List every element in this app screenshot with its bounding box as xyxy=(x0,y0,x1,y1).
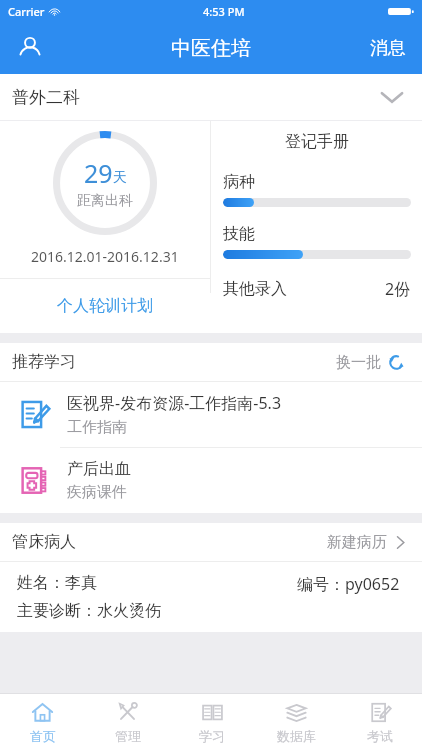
button[interactable]: 数据库 xyxy=(254,694,338,750)
staticText: 产后出血 xyxy=(67,459,131,479)
staticText: 技能 xyxy=(223,224,255,244)
button[interactable]: 其他录入 xyxy=(223,278,411,300)
staticText: 中医住培 xyxy=(171,36,251,61)
button[interactable]: 学习 xyxy=(170,694,254,750)
staticText: 推荐学习 xyxy=(12,352,76,372)
staticText: 首页 xyxy=(30,728,56,744)
staticText: 疾病课件 xyxy=(67,483,127,502)
staticText: 姓名：李真 xyxy=(17,573,97,593)
staticText: 数据库 xyxy=(277,728,316,744)
button[interactable]: 首页 xyxy=(0,694,85,750)
button[interactable]: 消息 xyxy=(360,27,416,70)
staticText: 个人轮训计划 xyxy=(57,296,153,316)
staticText: 其他录入 xyxy=(223,279,287,299)
staticText: 病种 xyxy=(223,172,255,192)
staticText: 2016.12.01-2016.12.31 xyxy=(31,247,179,266)
staticText: 考试 xyxy=(367,728,393,744)
staticText: 管床病人 xyxy=(12,532,76,552)
staticText: 登记手册 xyxy=(223,132,411,152)
staticText: 消息 xyxy=(370,37,406,60)
staticText: 普外二科 xyxy=(12,87,80,108)
staticText: 4:53 PM xyxy=(203,4,245,19)
button[interactable]: 医视界-发布资源-工作指南-5.3 xyxy=(0,382,422,447)
button[interactable]: 普外二科 xyxy=(0,74,422,120)
staticText: 工作指南 xyxy=(67,418,127,437)
staticText: 学习 xyxy=(199,728,225,744)
staticText: 2份 xyxy=(385,278,411,300)
staticText: 编号：py0652 xyxy=(297,573,400,595)
staticText: 管理 xyxy=(115,728,141,744)
button[interactable]: 姓名：李真 xyxy=(0,562,422,632)
staticText: 天 xyxy=(113,169,127,187)
button[interactable]: 新建病历 xyxy=(323,529,412,556)
staticText: 距离出科 xyxy=(77,192,133,210)
staticText: 29 xyxy=(84,156,113,190)
staticText: 主要诊断：水火烫伤 xyxy=(17,601,161,621)
button[interactable]: 管理 xyxy=(85,694,170,750)
button[interactable]: 个人轮训计划 xyxy=(0,279,210,333)
button[interactable]: 考试 xyxy=(338,694,422,750)
button[interactable]: Profile xyxy=(8,26,52,70)
staticText: 医视界-发布资源-工作指南-5.3 xyxy=(67,392,282,414)
staticText: 新建病历 xyxy=(327,533,387,552)
button[interactable]: 换一批 xyxy=(332,349,410,376)
staticText: 换一批 xyxy=(336,353,381,372)
staticText: Carrier xyxy=(8,4,45,19)
button[interactable]: 产后出血 xyxy=(0,448,422,513)
